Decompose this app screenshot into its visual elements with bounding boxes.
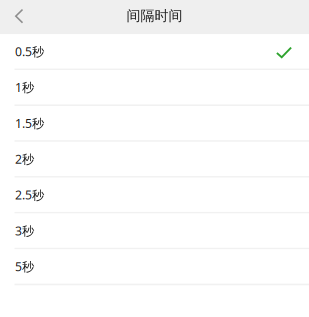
button[interactable]: 1秒 [0,70,309,106]
staticText: 3秒 [15,222,34,239]
button[interactable]: 2.5秒 [0,178,309,214]
staticText: 0.5秒 [15,43,44,60]
button[interactable]: Back [0,1,35,34]
button[interactable]: 1.5秒 [0,106,309,142]
staticText: 间隔时间 [126,7,182,25]
button[interactable]: 0.5秒 [0,34,309,70]
button[interactable]: 2秒 [0,142,309,178]
button[interactable]: 3秒 [0,213,309,249]
staticText: 2.5秒 [15,186,44,203]
staticText: 1秒 [15,79,34,96]
staticText: 2秒 [15,151,34,167]
button[interactable]: 5秒 [0,249,309,285]
staticText: 1.5秒 [15,115,44,131]
staticText: 5秒 [15,258,34,275]
